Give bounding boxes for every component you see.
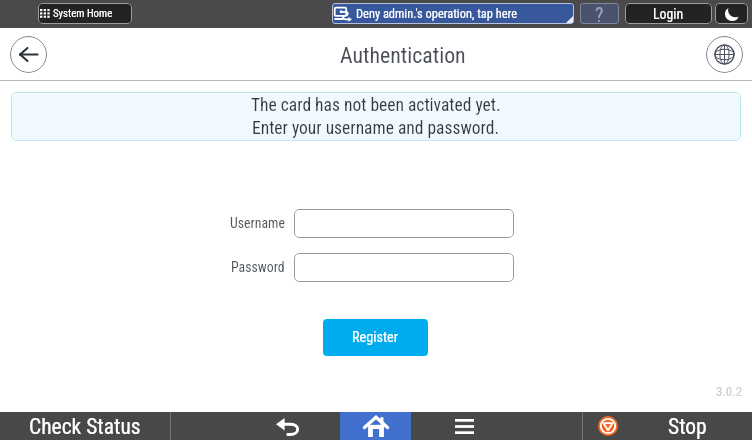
staticText: The card has not been activated yet. [251, 95, 501, 116]
button[interactable]: Register [323, 319, 428, 356]
staticText: Deny admin.'s operation, tap here [356, 6, 517, 21]
button[interactable]: System Home [38, 3, 132, 24]
staticText: Password [231, 259, 285, 275]
button[interactable]: Deny admin.'s operation, tap here [332, 3, 574, 24]
button[interactable]: Back [171, 412, 332, 440]
staticText: Enter your username and password. [252, 118, 500, 139]
button[interactable]: Menu [420, 412, 582, 440]
staticText: 3.0.2 [716, 384, 743, 399]
button[interactable]: Login [625, 3, 712, 24]
button[interactable]: Password input [294, 253, 514, 282]
staticText: Check Status [29, 414, 141, 439]
button[interactable]: Help [580, 3, 619, 24]
button[interactable]: Stop [583, 412, 752, 440]
button[interactable]: Check Status [0, 412, 170, 440]
button[interactable]: Username input [294, 209, 514, 238]
staticText: Stop [668, 414, 707, 439]
staticText: ? [595, 3, 604, 24]
button[interactable]: Home [332, 412, 420, 440]
staticText: Login [653, 6, 684, 22]
staticText: System Home [53, 7, 113, 20]
button[interactable]: Sleep mode [715, 3, 748, 24]
staticText: Username [230, 215, 285, 231]
staticText: Authentication [340, 43, 466, 69]
button[interactable]: Language [706, 36, 743, 73]
button[interactable]: Back [10, 36, 47, 73]
staticText: Register [352, 329, 399, 346]
